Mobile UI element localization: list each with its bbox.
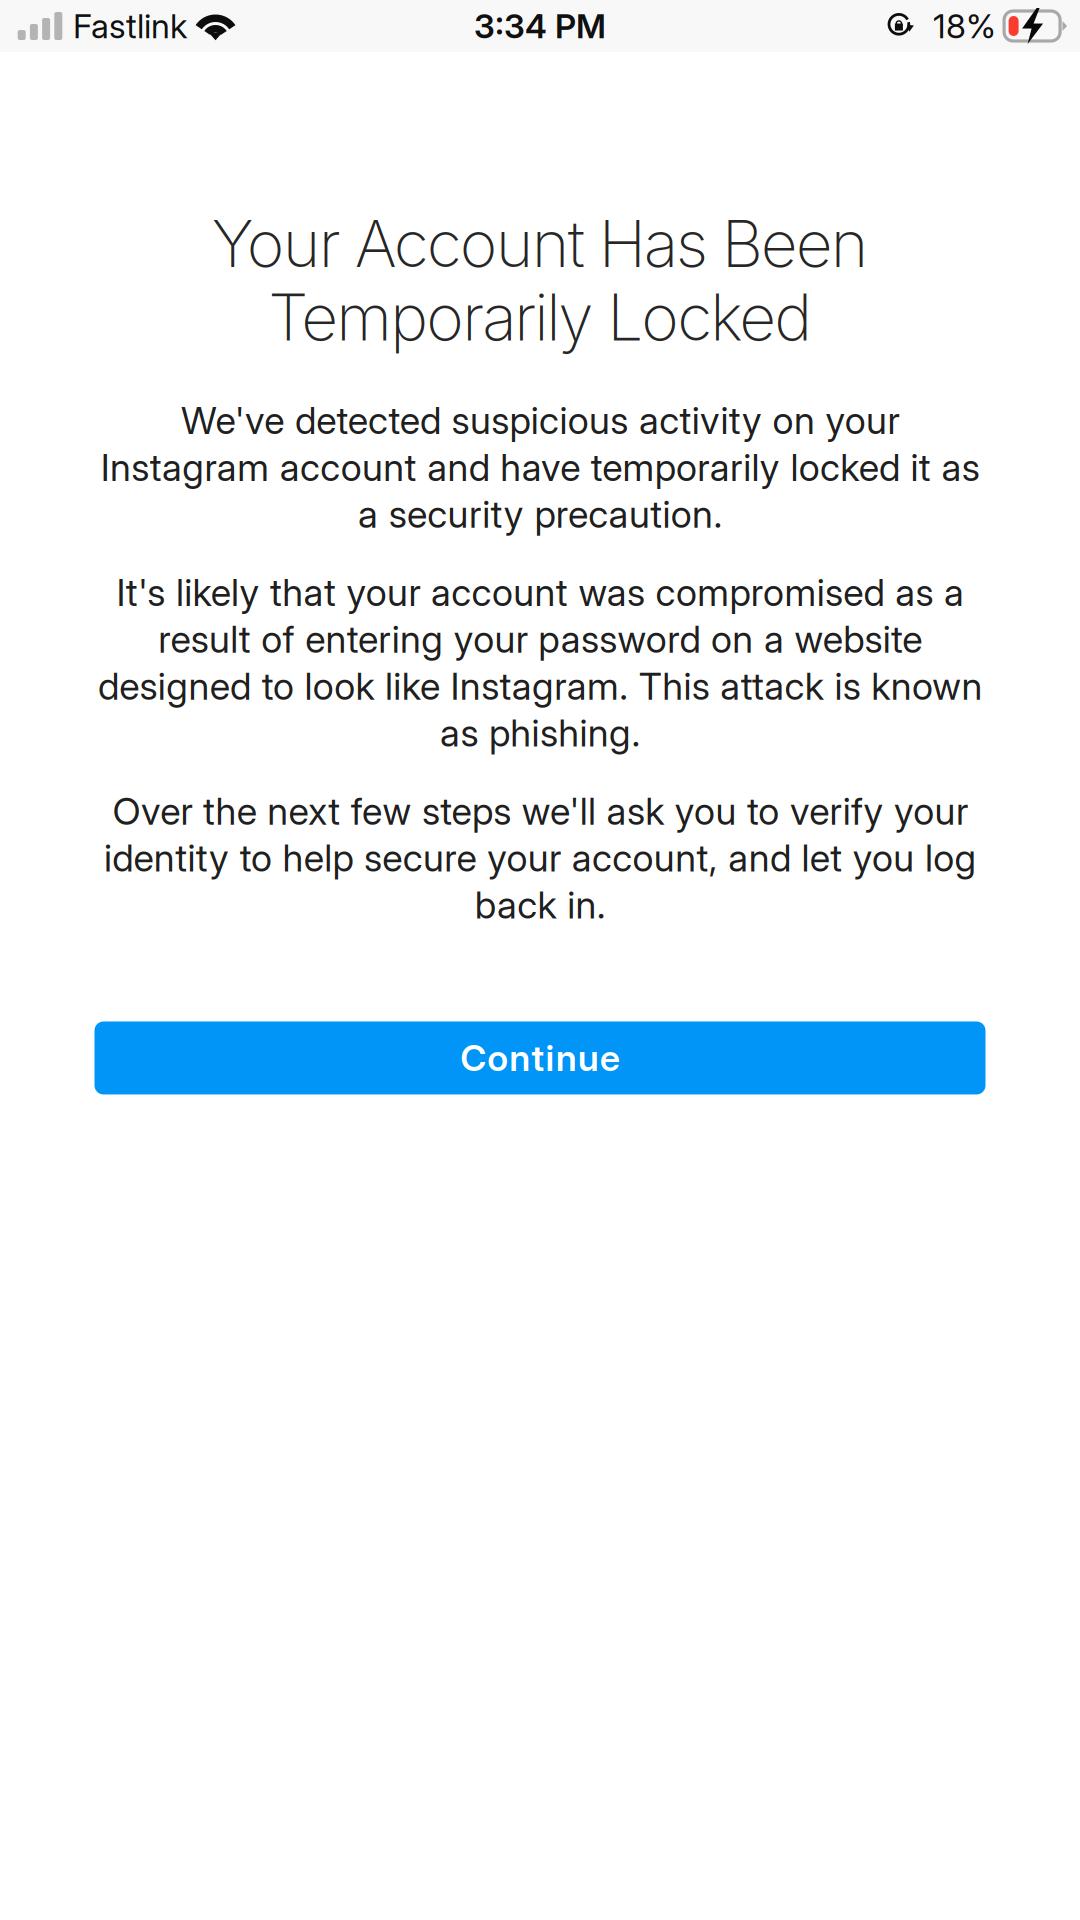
staticText: Continue bbox=[460, 1036, 620, 1080]
staticText: Fastlink bbox=[73, 6, 187, 46]
button[interactable]: Continue bbox=[94, 1021, 985, 1094]
staticText: Your Account Has Been Temporarily Locked bbox=[211, 205, 868, 356]
staticText: 3:34 PM bbox=[474, 6, 606, 46]
staticText: We've detected suspicious activity on yo… bbox=[100, 398, 979, 537]
staticText: Over the next few steps we'll ask you to… bbox=[104, 789, 976, 927]
staticText: It's likely that your account was compro… bbox=[98, 570, 982, 756]
staticText: 18% bbox=[933, 6, 996, 46]
